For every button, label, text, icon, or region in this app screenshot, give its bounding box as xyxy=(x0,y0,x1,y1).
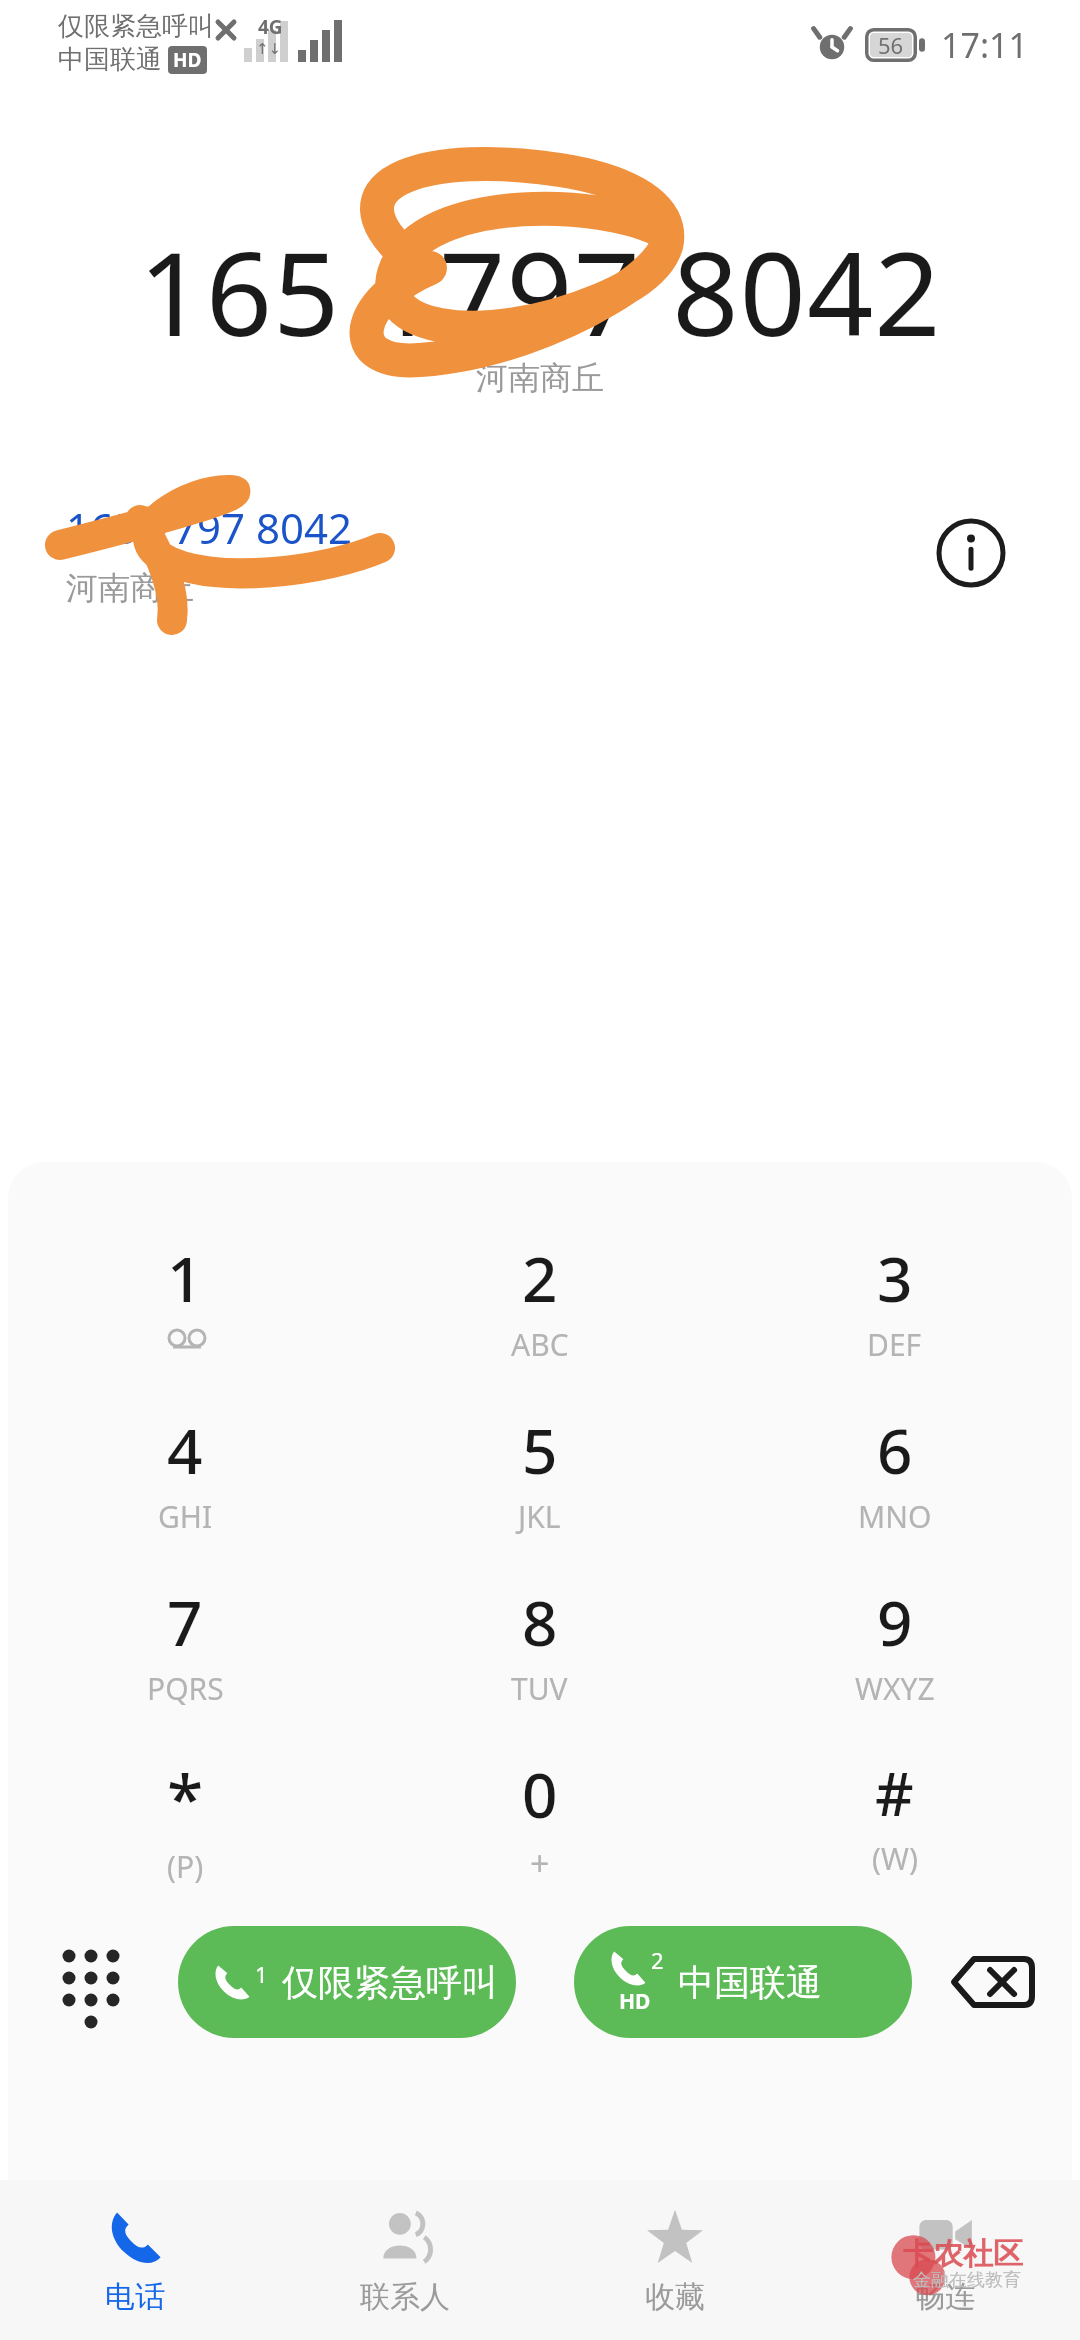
button[interactable]: 1 xyxy=(178,1926,516,2038)
staticText: 3 xyxy=(877,1236,913,1320)
staticText: 4 xyxy=(167,1408,203,1492)
button[interactable]: 8 xyxy=(362,1558,717,1730)
staticText: WXYZ xyxy=(855,1668,935,1709)
staticText: 0 xyxy=(522,1752,558,1836)
staticText: GHI xyxy=(158,1496,213,1537)
staticText: 仅限紧急呼叫 xyxy=(58,10,214,43)
button[interactable]: 4 xyxy=(8,1386,362,1558)
staticText: 电话 xyxy=(105,2278,165,2316)
button[interactable]: 2 xyxy=(362,1214,717,1386)
staticText: 金融在线教育 xyxy=(913,2269,1021,2292)
button[interactable]: * xyxy=(8,1730,362,1902)
staticText: 17:11 xyxy=(941,22,1028,68)
button[interactable]: 删除 xyxy=(912,1912,1072,2052)
staticText: 4G xyxy=(258,14,283,40)
button[interactable]: # xyxy=(717,1730,1072,1902)
button[interactable]: 0 xyxy=(362,1730,717,1902)
staticText: 仅限紧急呼叫 xyxy=(282,1960,500,2005)
staticText: 8 xyxy=(522,1580,558,1664)
button[interactable]: 详情 xyxy=(930,512,1012,594)
staticText: 5 xyxy=(522,1408,558,1492)
staticText: 中国联通 xyxy=(58,43,162,76)
staticText: # xyxy=(875,1752,914,1834)
button[interactable]: 1 xyxy=(8,1214,362,1386)
button[interactable]: 7 xyxy=(8,1558,362,1730)
staticText: 卡农社区 xyxy=(903,2235,1023,2273)
staticText: 1 xyxy=(255,1959,268,1989)
staticText: PQRS xyxy=(147,1668,224,1709)
staticText: 联系人 xyxy=(360,2278,450,2316)
staticText: (P) xyxy=(167,1846,204,1887)
button[interactable]: 收藏 xyxy=(540,2180,810,2340)
staticText: ↑↓ xyxy=(256,40,282,57)
staticText: 河南商丘 xyxy=(66,568,194,608)
staticText: 2 xyxy=(651,1945,664,1975)
button[interactable]: 键盘 xyxy=(8,1912,178,2052)
staticText: 165 1797 8042 xyxy=(0,212,1080,370)
staticText: * xyxy=(167,1752,204,1842)
staticText: HD xyxy=(173,47,202,73)
button[interactable]: 3 xyxy=(717,1214,1072,1386)
button[interactable]: 电话 xyxy=(0,2180,270,2340)
staticText: + xyxy=(530,1840,550,1886)
button[interactable]: 9 xyxy=(717,1558,1072,1730)
staticText: 9 xyxy=(877,1580,913,1664)
staticText: 165 1797 8042 xyxy=(66,499,353,556)
staticText: TUV xyxy=(511,1668,568,1709)
staticText: JKL xyxy=(518,1496,561,1537)
staticText: 56 xyxy=(878,30,904,60)
staticText: 2 xyxy=(522,1236,558,1320)
staticText: 河南商丘 xyxy=(0,358,1080,398)
staticText: 7 xyxy=(167,1580,203,1664)
button[interactable]: 5 xyxy=(362,1386,717,1558)
staticText: 中国联通 xyxy=(678,1960,896,2005)
staticText: ABC xyxy=(511,1324,569,1365)
staticText: HD xyxy=(619,1987,651,2016)
staticText: 畅连 xyxy=(915,2278,975,2316)
staticText: 6 xyxy=(877,1408,913,1492)
button[interactable]: 2 xyxy=(574,1926,912,2038)
button[interactable]: 6 xyxy=(717,1386,1072,1558)
button[interactable]: 畅连 xyxy=(810,2180,1080,2340)
staticText: (W) xyxy=(872,1838,918,1879)
staticText: 1 xyxy=(167,1236,203,1320)
staticText: DEF xyxy=(867,1324,922,1365)
staticText: 收藏 xyxy=(645,2278,705,2316)
button[interactable]: 联系人 xyxy=(270,2180,540,2340)
staticText: MNO xyxy=(858,1496,932,1537)
button[interactable]: 165 1797 8042 xyxy=(0,478,1080,628)
